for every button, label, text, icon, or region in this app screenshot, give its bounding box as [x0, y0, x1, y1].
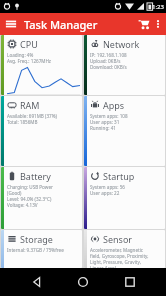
button[interactable]: Sensor — [84, 230, 165, 268]
staticText: CPU — [20, 38, 38, 50]
staticText: System apps: 108 — [90, 113, 128, 119]
button[interactable]: Open navigation menu — [3, 16, 19, 32]
button[interactable]: Network — [84, 35, 165, 95]
button[interactable]: Home — [73, 272, 93, 292]
staticText: Apps — [103, 99, 125, 111]
staticText: Light, Pressure, Gravity, — [90, 259, 141, 265]
staticText: Running: 41 — [90, 125, 116, 131]
staticText: User apps: 31 — [90, 119, 120, 125]
staticText: Internal: 9.37GB / 75%free — [7, 247, 64, 253]
staticText: (Good) — [7, 190, 22, 196]
button[interactable]: Startup — [84, 167, 165, 229]
staticText: IP: 192.168.1.108 — [90, 52, 127, 58]
button[interactable]: Apps — [84, 96, 165, 166]
button[interactable]: Store — [136, 16, 152, 32]
staticText: System apps: 56 — [90, 184, 125, 190]
staticText: Linear Accel. — [90, 265, 118, 268]
staticText: 1:23 — [152, 3, 164, 11]
staticText: Sensor — [103, 233, 133, 245]
staticText: Avg. Freq.: 1267MHz — [7, 58, 52, 64]
staticText: Network — [103, 38, 140, 50]
button[interactable]: RAM — [1, 96, 82, 166]
button[interactable]: CPU — [1, 35, 82, 95]
staticText: Available: 691MB (37%) — [7, 113, 57, 119]
staticText: Battery — [20, 170, 51, 182]
staticText: field, Gyroscope, Proximity, — [90, 253, 149, 259]
staticText: Startup — [103, 170, 135, 182]
button[interactable]: Recent apps — [120, 272, 140, 292]
button[interactable]: Back — [27, 272, 47, 292]
staticText: Loading: 4% — [7, 52, 34, 58]
staticText: Accelerometer, Magnetic — [90, 247, 144, 253]
button[interactable]: Battery — [1, 167, 82, 229]
button[interactable]: Storage — [1, 230, 82, 268]
staticText: Voltage: 4.13V — [7, 202, 38, 208]
button[interactable]: More options — [152, 17, 164, 31]
staticText: RAM — [20, 99, 40, 111]
staticText: Task Manager — [24, 17, 98, 32]
staticText: Storage — [20, 233, 53, 245]
staticText: Charging: USB Power — [7, 184, 53, 190]
staticText: Download: 0KB/s — [90, 64, 127, 70]
staticText: User apps: 22 — [90, 190, 120, 196]
staticText: Upload: 0KB/s — [90, 58, 121, 64]
staticText: Total: 1856MB — [7, 119, 38, 125]
staticText: Level: 94.0% (32.3°C) — [7, 196, 52, 202]
